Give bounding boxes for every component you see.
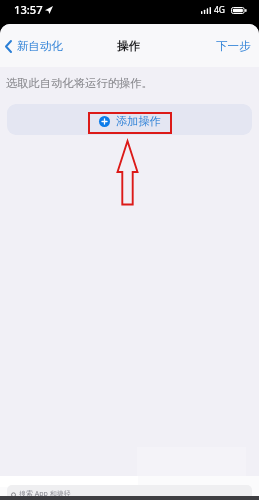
button[interactable]: 新自动化 [0,35,69,57]
staticText: 新自动化 [17,39,63,53]
staticText: 选取此自动化将运行的操作。 [6,76,153,90]
button[interactable]: Search [7,485,252,500]
staticText: 4G [214,4,226,16]
staticText: 搜索 App 和捷径 [19,489,71,499]
staticText: 添加操作 [116,114,161,128]
button[interactable]: 添加操作 [95,110,165,130]
staticText: 13:57 [14,2,43,17]
button[interactable]: 下一步 [208,34,259,58]
staticText: 操作 [117,39,140,53]
